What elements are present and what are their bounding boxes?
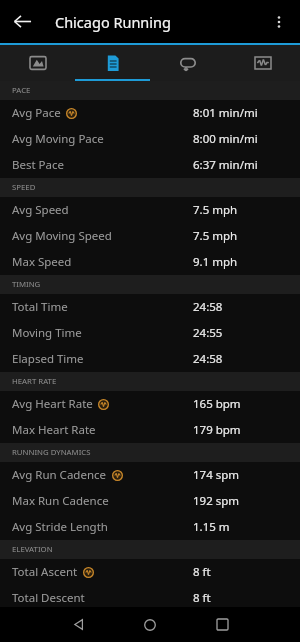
staticText: 8:01 min/mi [193,105,258,121]
staticText: 1.15 m [193,519,230,535]
button[interactable]: Avg Heart Rate [0,391,300,417]
staticText: 8:00 min/mi [193,131,258,147]
staticText: Max Run Cadence [12,493,109,509]
staticText: Total Ascent [12,564,78,580]
staticText: 8 ft [193,564,211,580]
staticText: HEART RATE [12,376,57,387]
staticText: Chicago Running [55,12,258,32]
staticText: 8 ft [193,590,211,606]
staticText: Avg Speed [12,202,69,218]
staticText: 24:58 [193,299,223,315]
staticText: 165 bpm [193,396,241,412]
staticText: Avg Stride Length [12,519,108,535]
staticText: 24:58 [193,351,223,367]
staticText: RUNNING DYNAMICS [12,447,91,458]
staticText: 7.5 mph [193,202,238,218]
staticText: ELEVATION [12,544,53,555]
staticText: Avg Pace [12,105,61,121]
button[interactable]: Elapsed Time [0,346,300,372]
button[interactable]: Avg Speed [0,197,300,223]
staticText: 174 spm [193,467,240,483]
button[interactable]: Charts [225,45,300,81]
staticText: 6:37 min/mi [193,157,258,173]
staticText: Avg Heart Rate [12,396,93,412]
button[interactable]: Recent apps [186,607,258,642]
staticText: Max Speed [12,254,72,270]
button[interactable]: Home [114,607,186,642]
staticText: Total Descent [12,590,85,606]
button[interactable]: Laps [150,45,225,81]
button[interactable]: Back [42,607,114,642]
staticText: Avg Moving Pace [12,131,104,147]
staticText: Elapsed Time [12,351,84,367]
button[interactable]: Back [0,0,44,43]
button[interactable]: Max Heart Rate [0,417,300,443]
button[interactable]: Best Pace [0,152,300,178]
button[interactable]: Avg Run Cadence [0,462,300,488]
staticText: 24:55 [193,325,223,341]
staticText: Moving Time [12,325,82,341]
button[interactable]: Max Speed [0,249,300,275]
staticText: Avg Run Cadence [12,467,107,483]
staticText: SPEED [12,182,36,193]
button[interactable]: Map [0,45,75,81]
staticText: TIMING [12,279,41,290]
staticText: 9.1 mph [193,254,238,270]
staticText: Max Heart Rate [12,422,96,438]
button[interactable]: Details [75,45,150,81]
staticText: 192 spm [193,493,240,509]
staticText: 179 bpm [193,422,241,438]
staticText: Avg Moving Speed [12,228,112,244]
button[interactable]: Moving Time [0,320,300,346]
staticText: PACE [12,85,31,96]
button[interactable]: Total Time [0,294,300,320]
staticText: Best Pace [12,157,65,173]
staticText: Total Time [12,299,68,315]
button[interactable]: Total Descent [0,585,300,607]
button[interactable]: More options [258,1,300,43]
button[interactable]: Avg Moving Speed [0,223,300,249]
button[interactable]: Avg Moving Pace [0,126,300,152]
button[interactable]: Total Ascent [0,559,300,585]
staticText: 7.5 mph [193,228,238,244]
button[interactable]: Avg Pace [0,100,300,126]
button[interactable]: Avg Stride Length [0,514,300,540]
button[interactable]: Max Run Cadence [0,488,300,514]
